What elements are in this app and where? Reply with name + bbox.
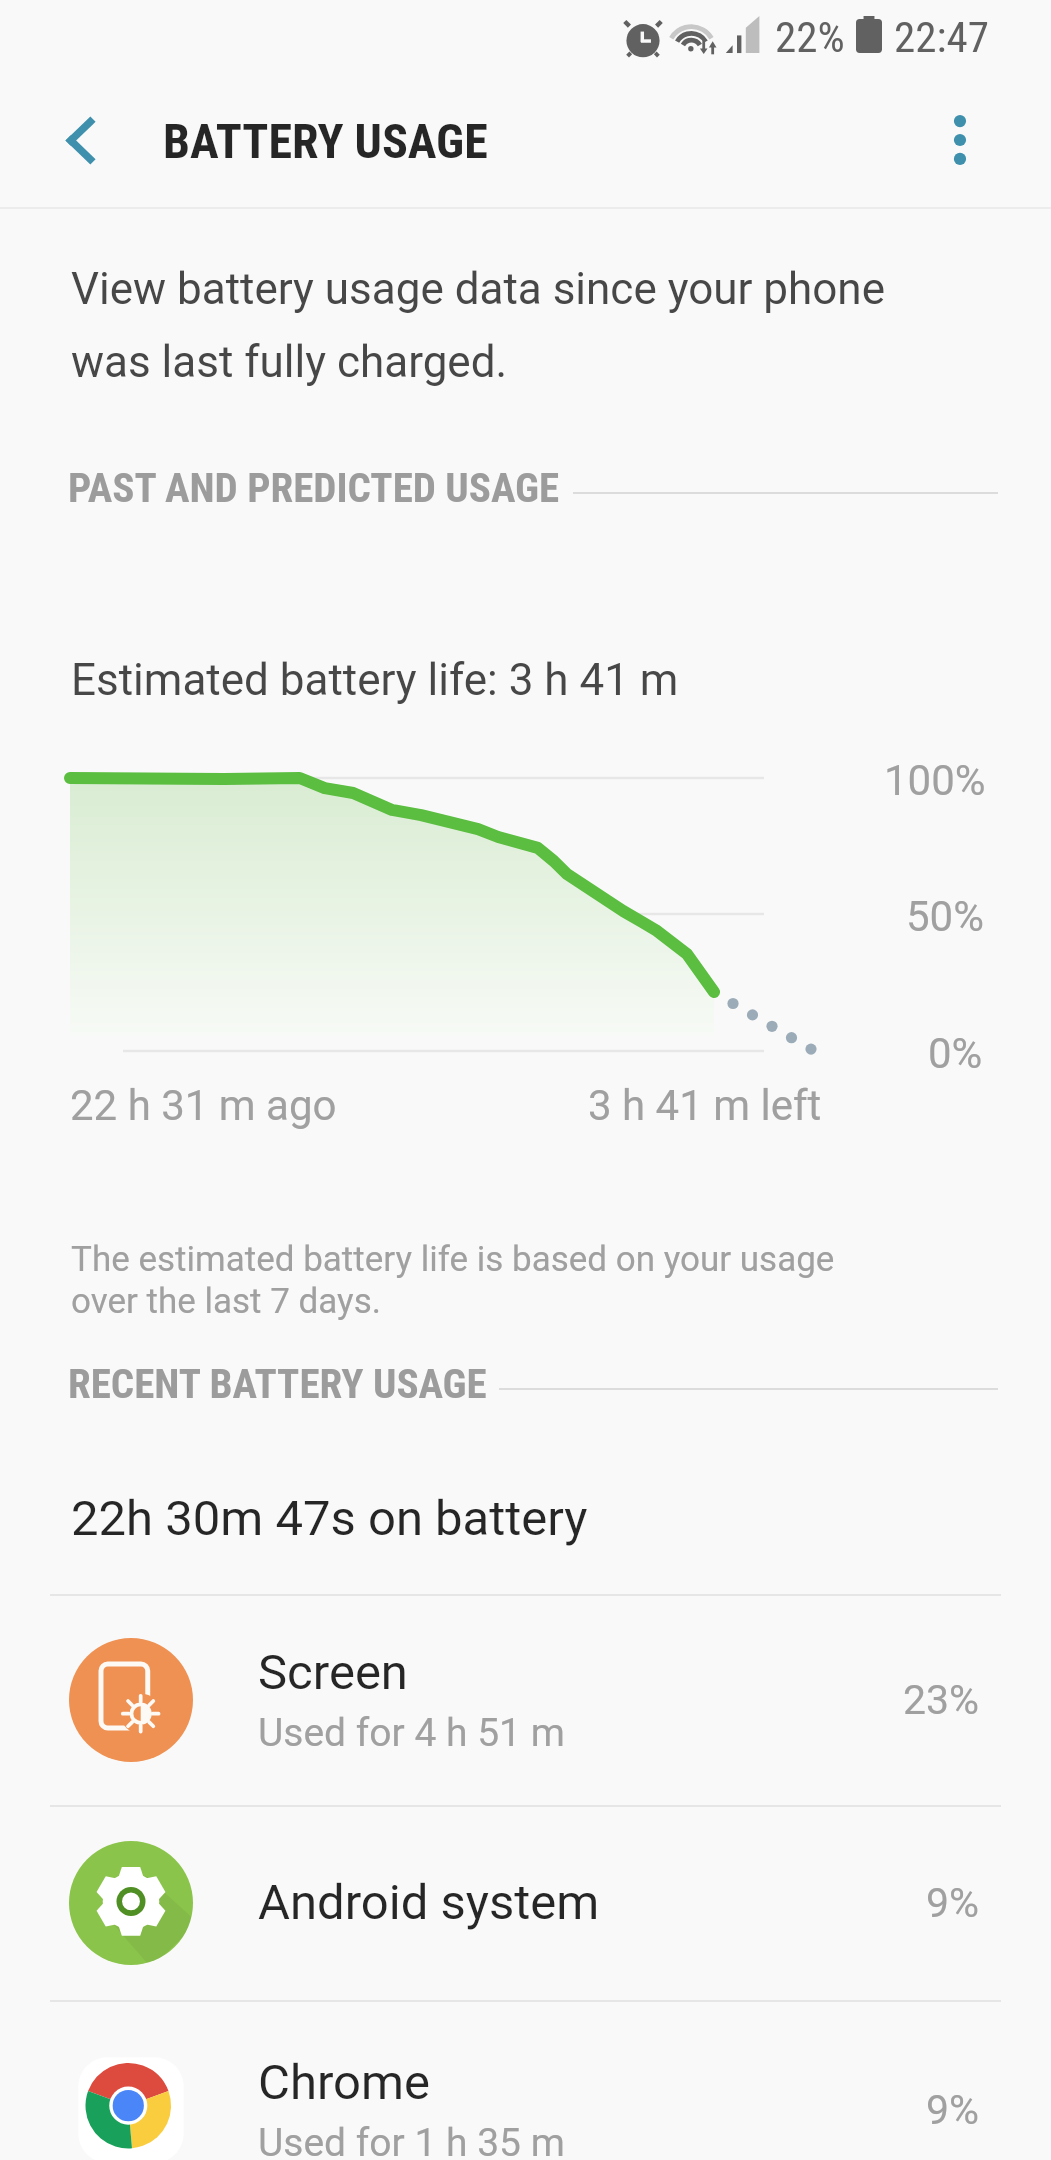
staticText: 22:47	[894, 12, 989, 62]
staticText: Screen	[258, 1644, 408, 1701]
staticText: The estimated battery life is based on y…	[71, 1239, 835, 1322]
button[interactable]: Chrome	[0, 2000, 1051, 2160]
staticText: RECENT BATTERY USAGE	[68, 1360, 487, 1408]
button[interactable]: Android system	[0, 1805, 1051, 2000]
staticText: Used for 1 h 35 m	[258, 2120, 565, 2160]
staticText: 3 h 41 m left	[588, 1081, 822, 1130]
staticText: Chrome	[258, 2054, 430, 2111]
staticText: BATTERY USAGE	[163, 113, 488, 169]
button[interactable]: Navigate up	[25, 85, 135, 195]
staticText: PAST AND PREDICTED USAGE	[68, 464, 560, 512]
staticText: View battery usage data since your phone…	[71, 263, 885, 388]
staticText: 22h 30m 47s on battery	[71, 1490, 588, 1547]
staticText: Used for 4 h 51 m	[258, 1710, 565, 1756]
staticText: Android system	[258, 1874, 600, 1931]
button[interactable]: More options	[905, 85, 1015, 195]
staticText: 50%	[906, 892, 984, 941]
staticText: 100%	[884, 756, 986, 805]
button[interactable]: Screen	[0, 1594, 1051, 1805]
staticText: 22%	[775, 12, 845, 62]
staticText: Estimated battery life: 3 h 41 m	[71, 654, 679, 706]
staticText: 9%	[926, 2086, 980, 2134]
staticText: 22 h 31 m ago	[70, 1081, 337, 1130]
staticText: 9%	[926, 1879, 980, 1927]
staticText: 0%	[928, 1029, 983, 1078]
staticText: 23%	[903, 1676, 980, 1724]
